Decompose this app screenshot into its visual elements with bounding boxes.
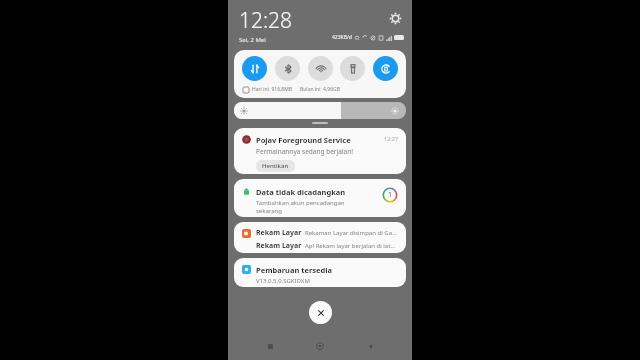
staticText: Sel, 2 Mei xyxy=(239,36,266,44)
button[interactable]: Rekam Layar xyxy=(234,222,406,253)
staticText: Rekaman Layar disimpan di Galer... xyxy=(305,229,398,237)
button[interactable]: Pembaruan tersedia xyxy=(234,258,406,287)
staticText: Hentikan xyxy=(262,162,289,170)
button[interactable]: Brightness xyxy=(234,102,406,119)
button[interactable]: Data tidak dicadangkan xyxy=(234,179,406,217)
staticText: 12:28 xyxy=(239,6,293,35)
button[interactable]: Auto rotate xyxy=(373,56,398,81)
staticText: Rekam Layar xyxy=(256,228,302,238)
staticText: sekarang xyxy=(256,207,282,215)
button[interactable]: Pojav Foreground Service xyxy=(234,128,406,174)
staticText: Rekam Layar xyxy=(256,241,302,251)
staticText: 423KB/d xyxy=(332,34,352,41)
staticText: Permainannya sedang berjalan! xyxy=(256,147,353,156)
staticText: Data tidak dicadangkan xyxy=(256,187,346,197)
button[interactable]: Recents xyxy=(262,338,278,354)
button[interactable]: Close xyxy=(309,301,332,324)
button[interactable]: Back xyxy=(362,338,378,354)
button[interactable]: Wi-Fi xyxy=(308,56,333,81)
staticText: 1 xyxy=(388,190,393,200)
staticText: Pojav Foreground Service xyxy=(256,135,351,145)
staticText: Tambahkan akun pencadangan xyxy=(256,199,345,207)
staticText: Hari ini 916,8MB xyxy=(252,86,293,93)
button[interactable]: Home xyxy=(312,338,328,354)
staticText: 12:27 xyxy=(384,135,399,142)
staticText: Bulan ini 4,96GB xyxy=(300,86,340,93)
button[interactable]: Mobile data xyxy=(242,56,267,81)
staticText: Pembaruan tersedia xyxy=(256,265,333,275)
button[interactable]: Hentikan xyxy=(256,160,295,172)
button[interactable]: Bluetooth xyxy=(275,56,300,81)
staticText: V13.0.5.0.SGKIDXM xyxy=(256,277,310,285)
button[interactable]: Flashlight xyxy=(340,56,365,81)
button[interactable]: Settings xyxy=(388,11,402,25)
staticText: Apl Rekam layar berjalan di latar... xyxy=(305,242,398,250)
